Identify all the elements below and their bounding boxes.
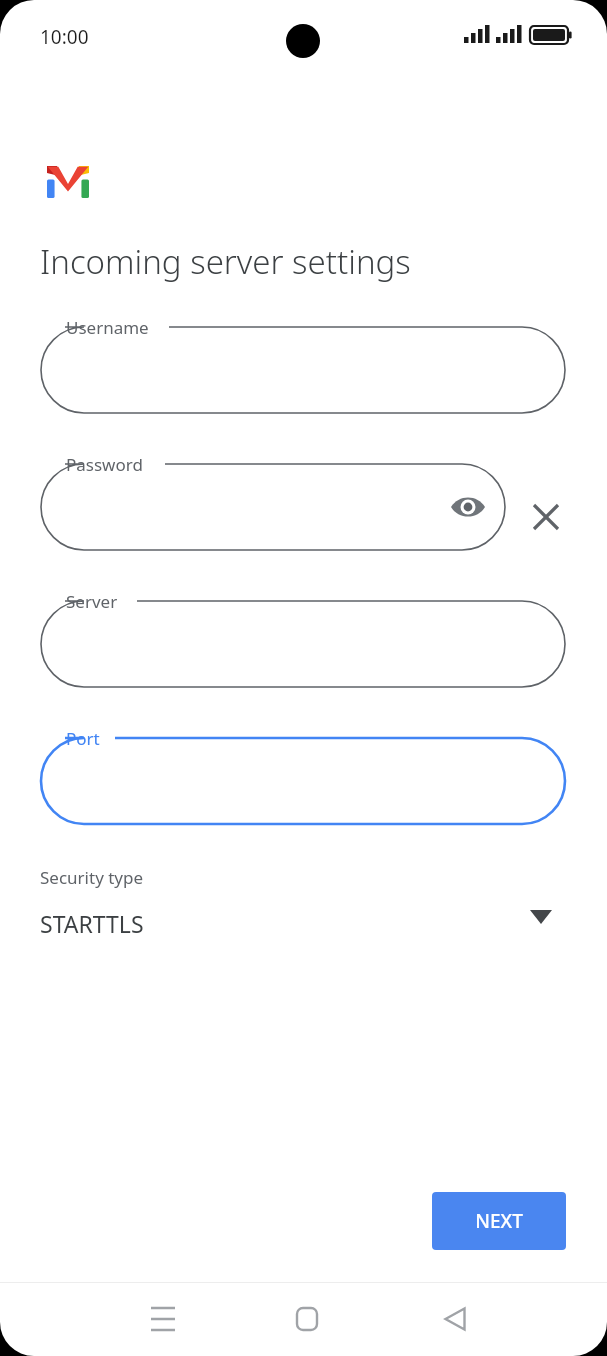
button[interactable]: Home: [277, 1289, 337, 1349]
staticText: Username: [66, 316, 149, 339]
staticText: NEXT: [475, 1208, 523, 1234]
staticText: STARTTLS: [40, 908, 144, 939]
button[interactable]: Recent apps: [133, 1289, 193, 1349]
button[interactable]: Server: [41, 601, 565, 687]
button[interactable]: Username: [41, 327, 565, 413]
staticText: Password: [66, 453, 143, 476]
button[interactable]: Clear: [528, 499, 564, 535]
staticText: Server: [66, 590, 118, 613]
button[interactable]: Back: [425, 1289, 485, 1349]
staticText: 10:00: [40, 24, 89, 50]
other: Gmail: [47, 166, 89, 198]
button[interactable]: NEXT: [432, 1192, 566, 1250]
staticText: Security type: [40, 866, 144, 889]
button[interactable]: Show password: [448, 488, 488, 526]
staticText: Incoming server settings: [40, 239, 411, 284]
button[interactable]: Port: [41, 738, 565, 824]
staticText: Port: [66, 727, 100, 750]
button[interactable]: Security type: [40, 860, 567, 952]
button[interactable]: Password: [41, 464, 505, 550]
